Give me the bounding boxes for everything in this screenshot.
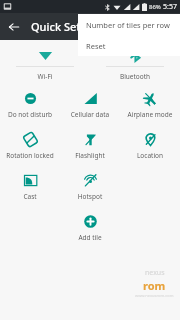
staticText: Number of tiles per row: [86, 20, 170, 30]
staticText: Location: [120, 151, 180, 160]
staticText: www.nexusrom.com: [135, 293, 174, 298]
button[interactable]: Reset: [78, 35, 180, 56]
button[interactable]: Cast: [0, 171, 60, 203]
staticText: Airplane mode: [120, 110, 180, 119]
staticText: rom: [143, 278, 166, 293]
staticText: Cast: [0, 192, 60, 201]
button[interactable]: Cellular data: [60, 89, 120, 121]
staticText: Quick Settings: [31, 19, 107, 34]
staticText: Do not disturb: [0, 110, 60, 119]
staticText: Add tile: [60, 233, 120, 242]
button[interactable]: Hotspot: [60, 171, 120, 203]
button[interactable]: Number of tiles per row: [78, 14, 180, 35]
staticText: nexus: [145, 268, 165, 278]
staticText: Flashlight: [60, 151, 120, 160]
staticText: Bluetooth: [90, 72, 180, 81]
button[interactable]: Back: [0, 13, 27, 40]
staticText: Cellular data: [60, 110, 120, 119]
staticText: Hotspot: [60, 192, 120, 201]
button[interactable]: Do not disturb: [0, 89, 60, 121]
staticText: Reset: [86, 41, 106, 51]
button[interactable]: Airplane mode: [120, 89, 180, 121]
staticText: 5:57: [163, 2, 177, 12]
button[interactable]: Flashlight: [60, 130, 120, 162]
staticText: 86%: [149, 3, 161, 11]
staticText: Wi-Fi: [0, 72, 90, 81]
button[interactable]: Location: [120, 130, 180, 162]
staticText: Rotation locked: [0, 151, 60, 160]
button[interactable]: Add tile: [60, 212, 120, 244]
button[interactable]: Wi-Fi: [0, 47, 90, 81]
button[interactable]: Rotation locked: [0, 130, 60, 162]
button[interactable]: Bluetooth: [90, 47, 180, 81]
